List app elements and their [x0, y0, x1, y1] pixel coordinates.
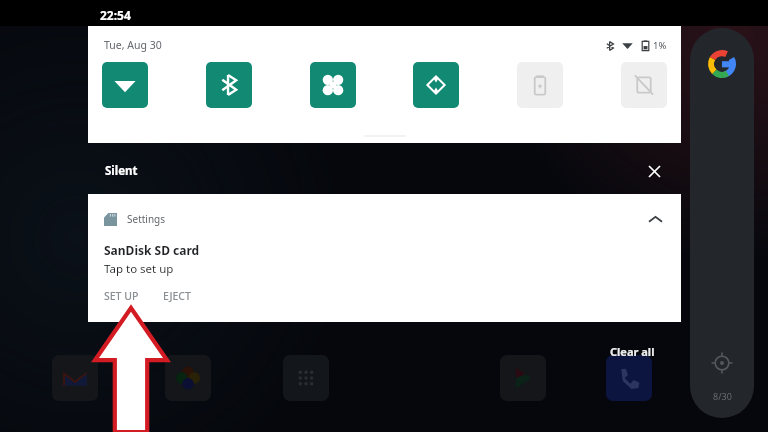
button[interactable]: Fan: [310, 62, 356, 108]
staticText: Settings: [127, 212, 166, 226]
button[interactable]: Phone: [606, 355, 652, 401]
button[interactable]: Clear all: [604, 340, 661, 363]
staticText: Tap to set up: [104, 261, 174, 277]
button[interactable]: Photos: [165, 355, 211, 401]
button[interactable]: Google search: [690, 28, 754, 418]
button[interactable]: All apps: [283, 355, 329, 401]
staticText: SanDisk SD card: [104, 242, 200, 258]
button[interactable]: Play Store: [500, 355, 546, 401]
button[interactable]: Auto rotate: [413, 62, 459, 108]
button[interactable]: SET UP: [104, 289, 141, 303]
button[interactable]: Bluetooth: [206, 62, 252, 108]
staticText: Clear all: [610, 344, 655, 359]
staticText: SET UP: [104, 289, 139, 303]
staticText: EJECT: [163, 289, 191, 303]
staticText: 1%: [653, 39, 667, 52]
button[interactable]: EJECT: [163, 289, 191, 303]
staticText: Tue, Aug 30: [104, 38, 162, 52]
button[interactable]: Gmail: [52, 355, 98, 401]
staticText: 8/30: [713, 390, 732, 402]
staticText: 22:54: [100, 7, 131, 23]
button[interactable]: Do not disturb: [621, 62, 667, 108]
button[interactable]: Wi-Fi: [102, 62, 148, 108]
staticText: Silent: [105, 163, 138, 179]
button[interactable]: Dismiss silent notifications: [643, 160, 665, 182]
button[interactable]: Collapse notification: [643, 207, 667, 231]
button[interactable]: Settings: [88, 194, 681, 322]
button[interactable]: Battery saver: [517, 62, 563, 108]
